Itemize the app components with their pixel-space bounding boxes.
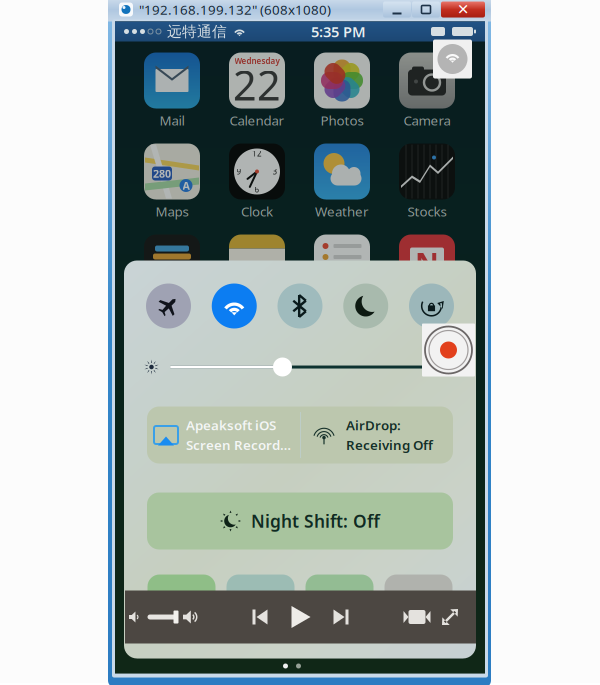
staticText: Clock [241,202,273,220]
button[interactable]: 280 [144,143,200,220]
staticText: Wednesday [234,56,279,66]
button[interactable]: Wi-Fi status [433,39,472,78]
button[interactable]: Quick action [226,574,294,631]
button[interactable]: Quick action [305,574,373,631]
staticText: Stocks [407,202,446,220]
button[interactable]: Quick action [384,574,452,631]
button[interactable]: Night Shift: Off [147,492,453,549]
staticText: Mail [159,111,184,129]
button[interactable] [229,234,285,290]
staticText: Receiving Off [346,436,433,454]
staticText: Maps [155,202,188,220]
button[interactable]: 12 [229,143,285,220]
button[interactable]: AirDrop: [301,406,453,463]
staticText: 12 [252,148,262,159]
staticText: Camera [403,111,450,129]
staticText: Night Shift: Off [251,509,380,532]
button[interactable] [314,234,370,290]
button[interactable]: Close [441,1,485,18]
staticText: 5:35 PM [311,22,366,41]
button[interactable]: Airplane Mode [146,283,191,328]
staticText: 3 [272,166,277,177]
button[interactable]: Previous track [249,605,271,629]
button[interactable]: Play [288,604,314,630]
staticText: 22 [233,57,281,112]
button[interactable]: Rotation Lock [409,283,454,328]
staticText: Screen Record… [186,436,291,454]
button[interactable]: Wi-Fi [212,283,257,328]
button[interactable]: Next track [330,605,352,629]
staticText: "192.168.199.132" (608x1080) [139,1,331,18]
staticText: Weather [315,202,369,220]
button[interactable]: N [399,234,455,290]
button[interactable] [144,234,200,290]
staticText: 远特通信 [167,22,227,40]
button[interactable]: Bluetooth [277,283,322,328]
button[interactable]: Wednesday [229,52,285,129]
staticText: ✕ [457,1,469,18]
button[interactable]: Minimize [383,1,411,17]
staticText: A [182,178,189,193]
button[interactable]: Do Not Disturb [343,283,388,328]
button[interactable]: Start Recording [422,323,475,376]
staticText: Apeaksoft iOS [186,416,276,434]
button[interactable]: Full screen [438,605,462,629]
button[interactable]: Apeaksoft iOS [147,406,300,463]
staticText: 280 [153,166,171,181]
staticText: AirDrop: [346,416,401,434]
button[interactable]: Weather [314,143,370,220]
button[interactable]: Maximize [412,1,440,17]
button[interactable]: Stocks [399,143,455,220]
button[interactable]: Quick action [147,574,215,631]
button[interactable]: Mail [144,52,200,129]
button[interactable]: Record video [402,606,432,628]
staticText: Calendar [229,111,284,129]
staticText: Photos [320,111,363,129]
staticText: 6 [254,184,259,195]
staticText: 9 [236,166,241,177]
staticText: N [415,243,439,282]
button[interactable]: Photos [314,52,370,129]
button[interactable]: Camera [399,52,455,129]
